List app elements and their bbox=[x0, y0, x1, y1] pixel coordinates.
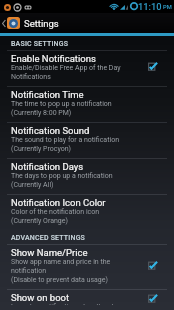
staticText: Launch a notification when the phone bbox=[11, 303, 128, 305]
button[interactable]: Notification Days bbox=[0, 159, 174, 195]
staticText: Show app name and price in the notificat… bbox=[11, 258, 111, 284]
staticText: Notification Time bbox=[11, 89, 84, 100]
button[interactable]: Notification Icon Color bbox=[0, 195, 174, 230]
staticText: The time to pop up a notification (Curre… bbox=[11, 100, 112, 117]
staticText: Enable Notifications bbox=[11, 53, 96, 64]
staticText: PM bbox=[163, 4, 172, 11]
staticText: The sound to play for a notification (Cu… bbox=[11, 136, 120, 153]
staticText: ADVANCED SETTINGS bbox=[11, 234, 86, 242]
button[interactable]: Show on boot bbox=[0, 290, 174, 310]
staticText: Settings bbox=[24, 18, 59, 29]
staticText: Enable/Disable Free App of the Day Notif… bbox=[11, 64, 121, 81]
staticText: Color of the notification icon (Currentl… bbox=[11, 208, 100, 225]
staticText: Notification Sound bbox=[11, 125, 90, 136]
button[interactable]: Enable Notifications bbox=[0, 51, 174, 87]
staticText: Notification Days bbox=[11, 161, 84, 172]
staticText: The days to pop up a notification (Curre… bbox=[11, 172, 113, 189]
button[interactable]: Up bbox=[0, 13, 174, 33]
button[interactable]: Notification Sound bbox=[0, 123, 174, 159]
button[interactable]: Show Name/Price bbox=[0, 245, 174, 290]
staticText: Show Name/Price bbox=[11, 247, 88, 258]
staticText: 11:10 bbox=[138, 1, 162, 12]
staticText: Notification Icon Color bbox=[11, 197, 106, 208]
staticText: Show on boot bbox=[11, 292, 70, 303]
button[interactable]: Notification Time bbox=[0, 87, 174, 123]
staticText: BASIC SETTINGS bbox=[11, 40, 69, 48]
